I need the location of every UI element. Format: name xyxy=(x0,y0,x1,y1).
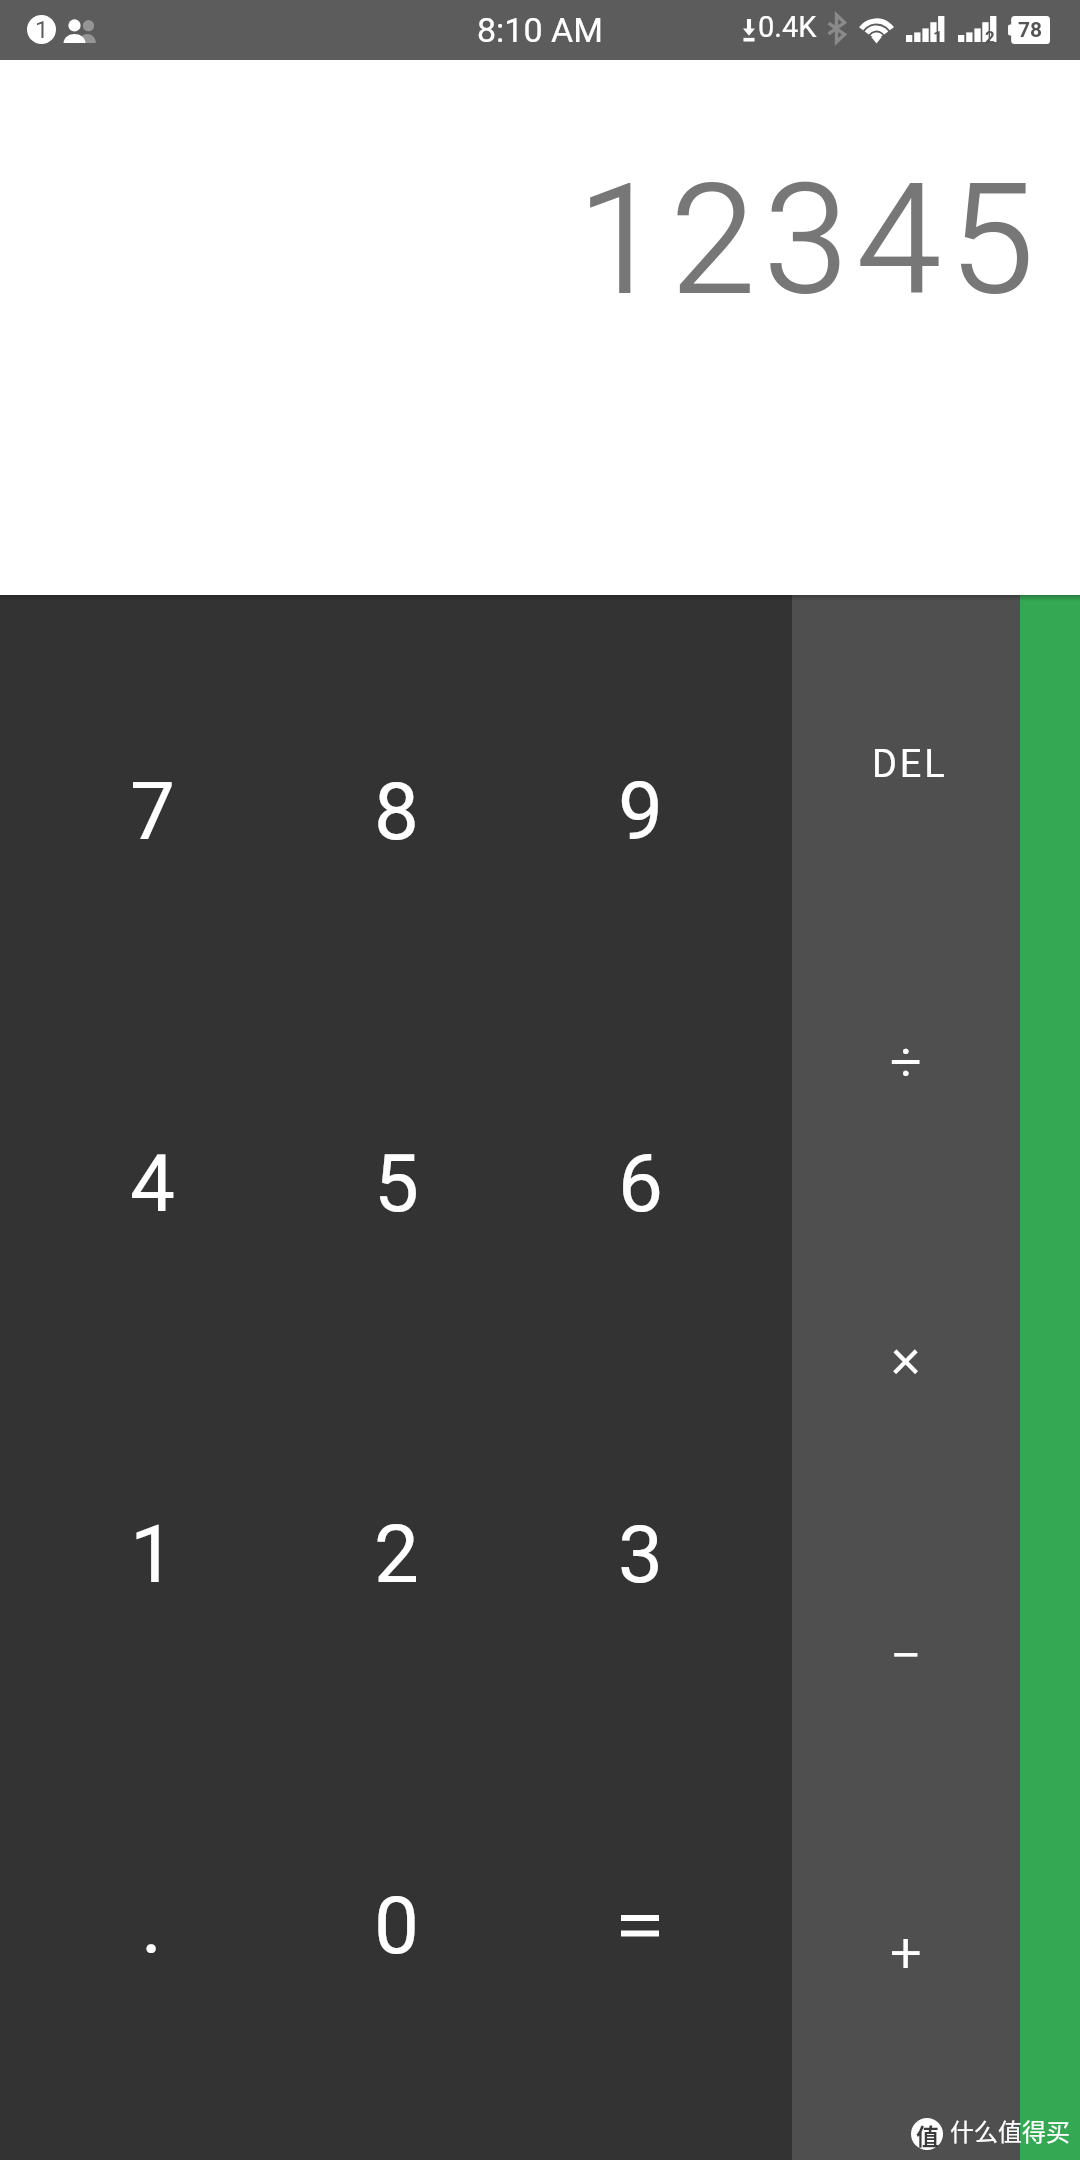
staticText: 1 xyxy=(35,16,49,44)
staticText: 12345 xyxy=(577,150,1042,330)
button[interactable]: 8 xyxy=(274,626,518,998)
button[interactable]: 7 xyxy=(30,626,274,998)
staticText: × xyxy=(891,1326,921,1392)
staticText: 2 xyxy=(374,1508,419,1602)
button[interactable]: 2 xyxy=(274,1369,518,1740)
staticText: 78 xyxy=(1018,18,1043,43)
button[interactable]: 5 xyxy=(274,998,518,1369)
staticText: 0 xyxy=(374,1879,419,1973)
staticText: 8 xyxy=(374,765,419,859)
button[interactable]: DEL xyxy=(792,616,1020,913)
button[interactable]: 9 xyxy=(518,626,762,998)
staticText: 8:10 AM xyxy=(477,10,603,50)
staticText: 3 xyxy=(618,1508,663,1602)
staticText: ÷ xyxy=(890,1029,922,1095)
staticText: 0.4K xyxy=(758,10,817,44)
button[interactable]: + xyxy=(792,1804,1020,2101)
button[interactable]: 3 xyxy=(518,1369,762,1740)
staticText: 4 xyxy=(130,1137,175,1231)
staticText: 1 xyxy=(933,27,943,47)
staticText: 5 xyxy=(374,1137,419,1231)
button[interactable]: − xyxy=(792,1507,1020,1804)
button[interactable]: 4 xyxy=(30,998,274,1369)
button[interactable]: ÷ xyxy=(792,913,1020,1210)
staticText: . xyxy=(141,1879,163,1973)
staticText: DEL xyxy=(872,742,948,787)
button[interactable]: 6 xyxy=(518,998,762,1369)
button[interactable] xyxy=(518,1740,762,2111)
staticText: 6 xyxy=(618,1137,663,1231)
button[interactable]: × xyxy=(792,1210,1020,1507)
staticText: + xyxy=(890,1920,922,1986)
staticText: − xyxy=(890,1623,922,1689)
button[interactable]: Open history panel xyxy=(1020,595,1080,2160)
button[interactable]: . xyxy=(30,1740,274,2111)
staticText: 9 xyxy=(618,765,663,859)
button[interactable]: 1 xyxy=(30,1369,274,1740)
staticText: 值 xyxy=(916,2118,939,2150)
staticText: 2 xyxy=(985,27,995,47)
staticText: 1 xyxy=(130,1508,175,1602)
staticText: 7 xyxy=(130,765,175,859)
staticText: 什么值得买 xyxy=(950,2113,1070,2148)
button[interactable]: 0 xyxy=(274,1740,518,2111)
